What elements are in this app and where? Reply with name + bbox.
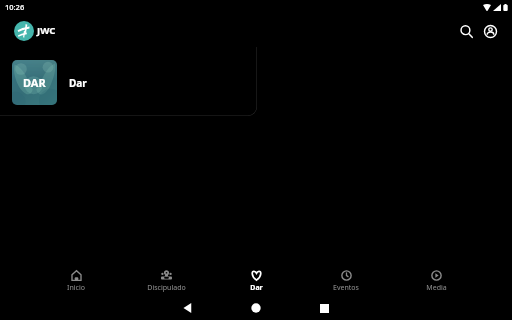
staticText: Inicio [67,283,85,293]
staticText: Media [426,283,447,293]
staticText: DAR [23,75,46,90]
staticText: Dar [69,76,87,90]
button[interactable]: Media [391,262,481,296]
button[interactable]: Search [454,19,478,43]
button[interactable]: Account [478,19,502,43]
button[interactable]: Back [153,296,221,320]
button[interactable]: DAR [0,47,257,116]
button[interactable]: Dar [211,262,301,296]
button[interactable]: Home [221,296,290,320]
button[interactable]: Eventos [301,262,391,296]
staticText: Dar [250,283,263,293]
staticText: Discipulado [147,283,186,293]
button[interactable]: Discipulado [121,262,211,296]
button[interactable]: Inicio [31,262,121,296]
staticText: 10:26 [5,2,25,12]
other: Home [251,303,261,313]
other: Back [183,303,192,313]
staticText: Eventos [333,283,359,293]
button[interactable]: Recents [290,296,359,320]
staticText: JWC [37,24,56,37]
